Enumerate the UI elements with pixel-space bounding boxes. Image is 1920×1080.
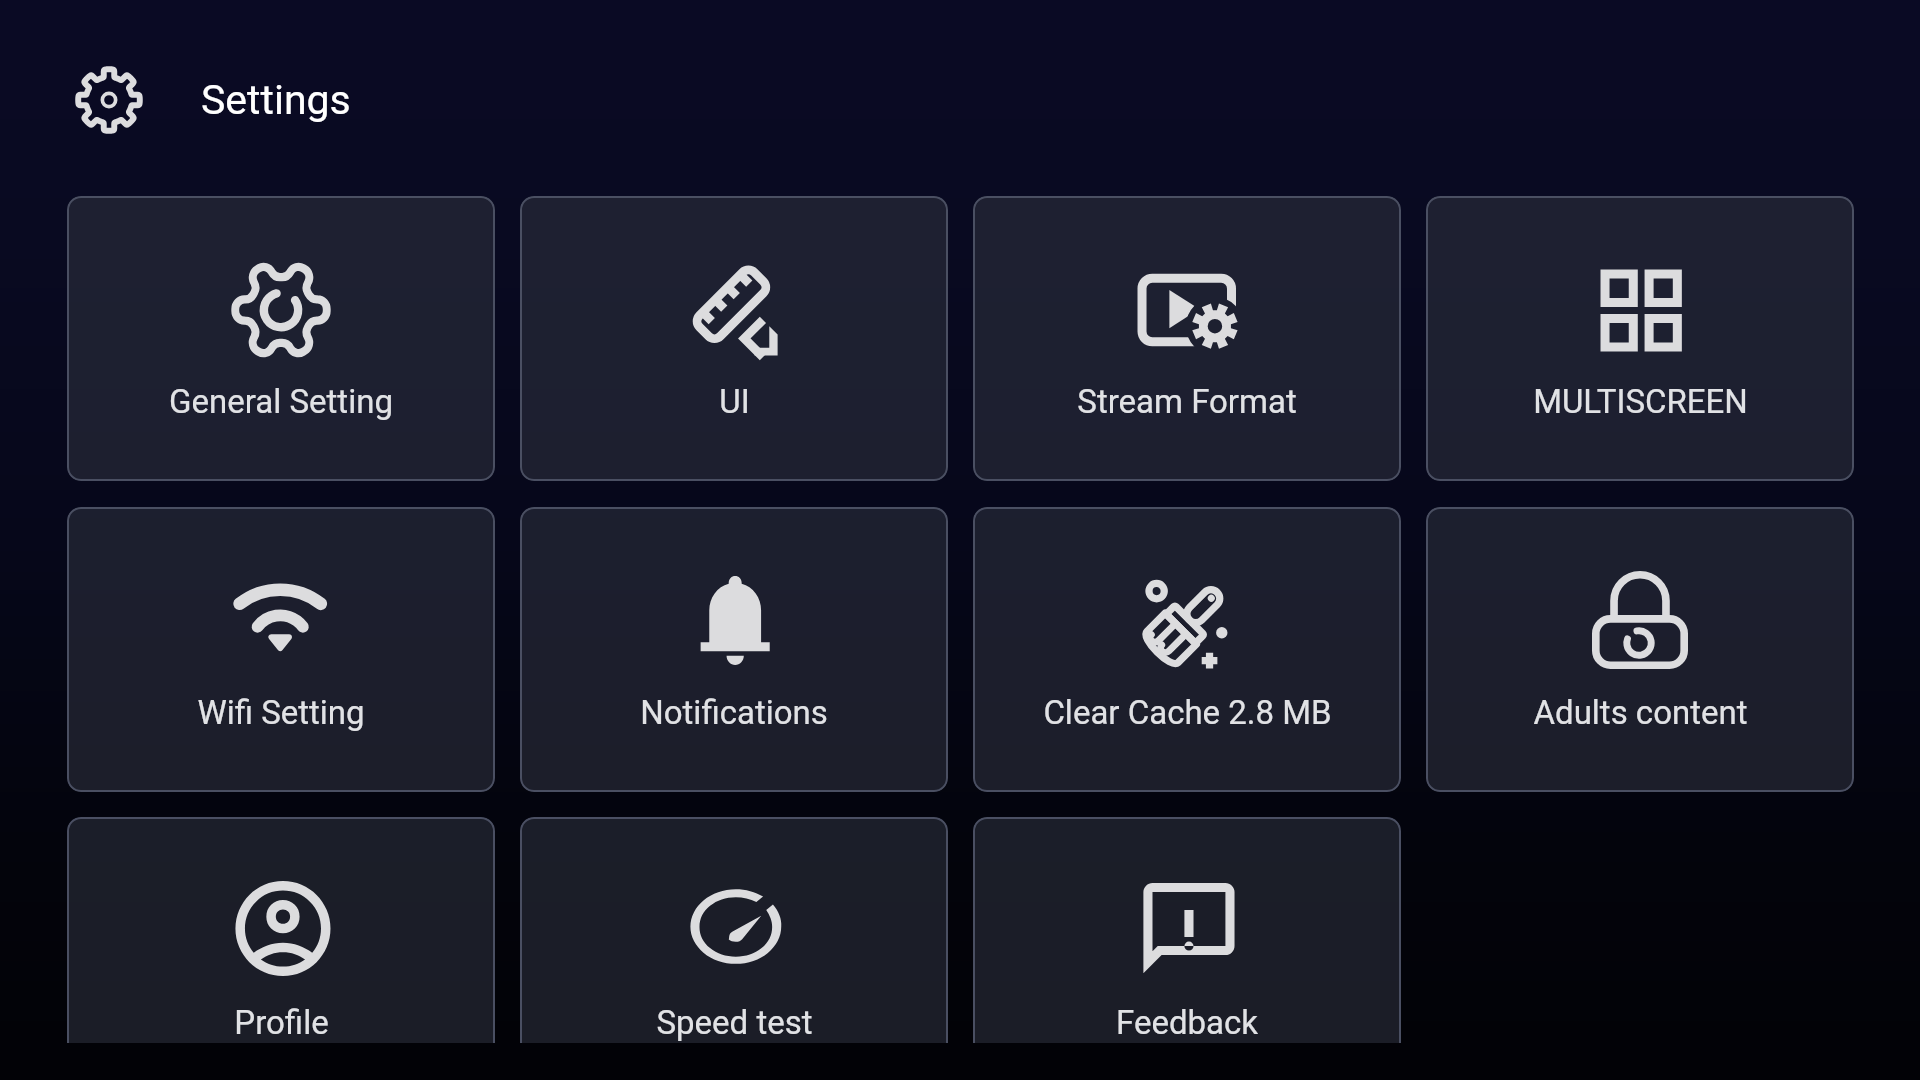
staticText: MULTISCREEN (1533, 382, 1748, 421)
staticText: Wifi Setting (197, 693, 365, 732)
staticText: General Setting (169, 382, 393, 421)
staticText: Notifications (640, 693, 828, 732)
button[interactable]: MULTISCREEN (1426, 196, 1854, 481)
button[interactable]: General Setting (67, 196, 495, 481)
button[interactable]: Clear Cache 2.8 MB (973, 507, 1401, 792)
staticText: Profile (234, 1003, 329, 1042)
staticText: Feedback (1116, 1003, 1258, 1042)
staticText: Adults content (1533, 693, 1748, 732)
button[interactable]: Profile (67, 817, 495, 1043)
button[interactable]: Feedback (973, 817, 1401, 1043)
staticText: Stream Format (1077, 382, 1297, 421)
button[interactable]: Adults content (1426, 507, 1854, 792)
staticText: UI (719, 382, 750, 421)
staticText: Speed test (656, 1003, 813, 1042)
button[interactable]: UI (520, 196, 948, 481)
staticText: Clear Cache 2.8 MB (1043, 693, 1332, 732)
button[interactable]: Notifications (520, 507, 948, 792)
button[interactable]: Speed test (520, 817, 948, 1043)
button[interactable]: Wifi Setting (67, 507, 495, 792)
button[interactable]: Stream Format (973, 196, 1401, 481)
staticText: Settings (201, 76, 351, 124)
other: Settings (74, 65, 144, 135)
